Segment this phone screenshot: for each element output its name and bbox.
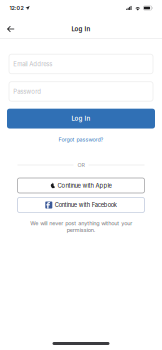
button[interactable]: Log In [7,109,155,128]
staticText: 12:02 [9,5,23,11]
staticText: Log In [71,25,90,33]
staticText: OR [77,162,84,168]
staticText: Log In [71,115,90,122]
staticText: Password [13,88,41,95]
staticText: Email Address [13,60,52,68]
button[interactable]: Forgot password? [9,134,153,145]
staticText: We will never post anything without your… [30,220,132,233]
staticText: Continue with Apple [57,182,111,189]
button[interactable]: Continue with Apple [17,178,144,193]
button[interactable]: Continue with Facebook [17,197,144,212]
button[interactable]: Back [3,21,18,37]
staticText: Forgot password? [58,136,103,143]
staticText: Continue with Facebook [55,201,117,208]
